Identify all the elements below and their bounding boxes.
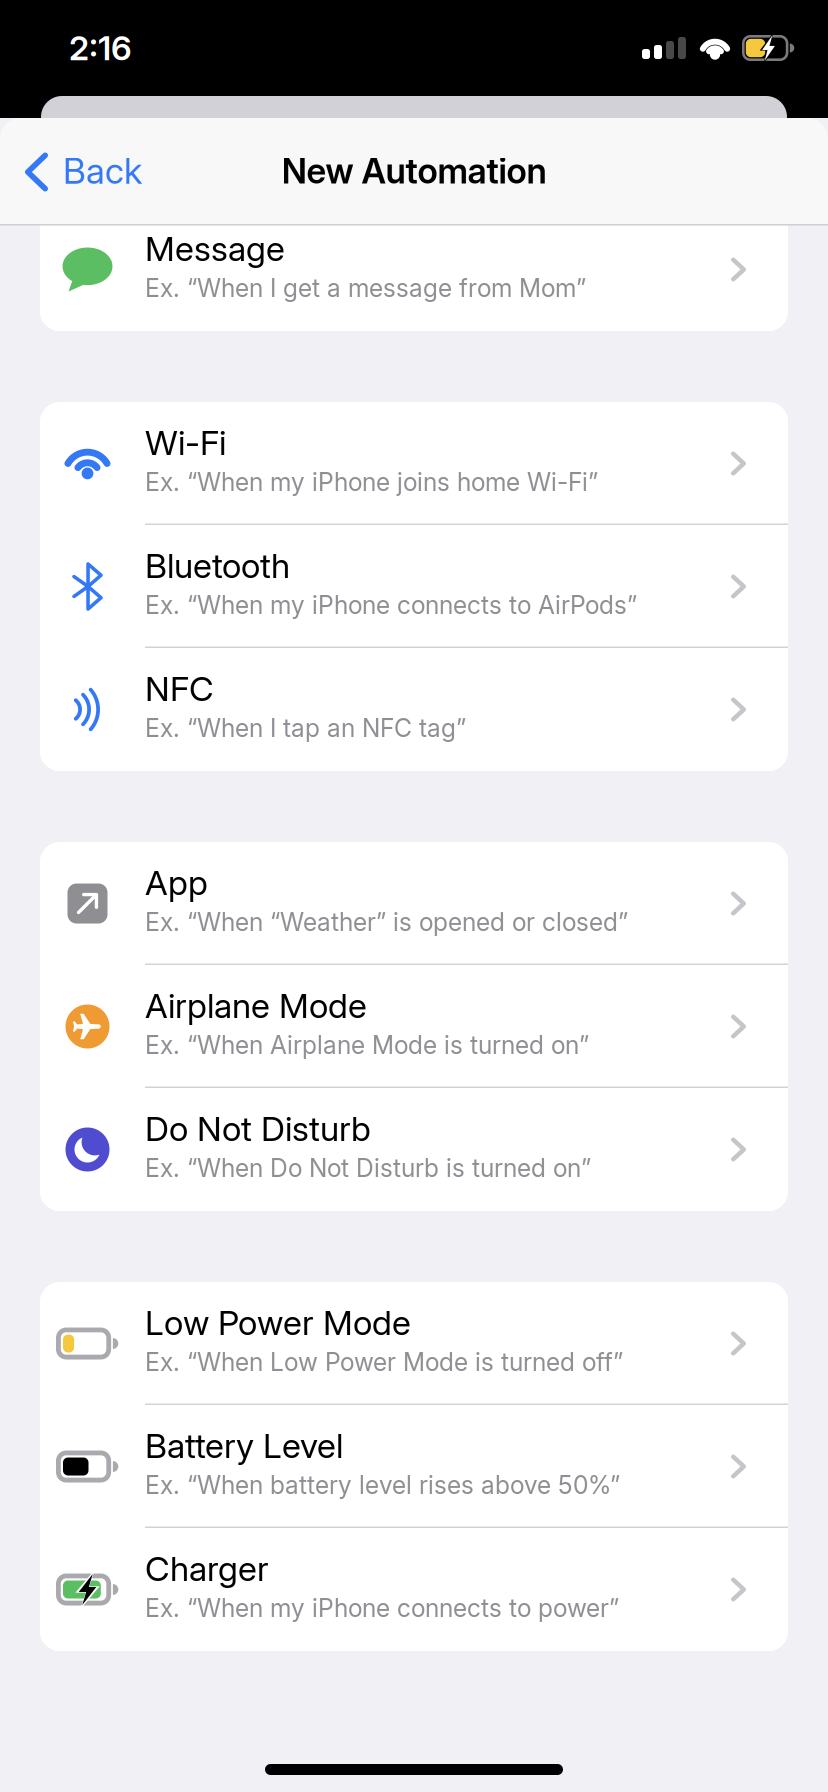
- button[interactable]: Message: [40, 208, 788, 331]
- staticText: Charger: [145, 1548, 269, 1589]
- staticText: Ex. “When Airplane Mode is turned on”: [145, 1030, 589, 1060]
- staticText: Ex. “When battery level rises above 50%”: [145, 1470, 620, 1500]
- staticText: Back: [63, 150, 142, 192]
- staticText: Ex. “When Low Power Mode is turned off”: [145, 1347, 623, 1377]
- button[interactable]: App: [40, 842, 788, 965]
- button[interactable]: Airplane Mode: [40, 965, 788, 1088]
- staticText: App: [145, 862, 208, 903]
- staticText: Ex. “When my iPhone connects to power”: [145, 1593, 619, 1623]
- button[interactable]: Charger: [40, 1528, 788, 1651]
- staticText: Bluetooth: [145, 545, 290, 586]
- staticText: Do Not Disturb: [145, 1108, 371, 1149]
- button[interactable]: Battery Level: [40, 1405, 788, 1528]
- button[interactable]: Low Power Mode: [40, 1282, 788, 1405]
- staticText: Ex. “When I tap an NFC tag”: [145, 713, 466, 743]
- staticText: Message: [145, 228, 285, 269]
- staticText: Low Power Mode: [145, 1302, 411, 1343]
- button[interactable]: Wi-Fi: [40, 402, 788, 525]
- staticText: Wi-Fi: [145, 422, 226, 463]
- staticText: Ex. “When my iPhone connects to AirPods”: [145, 590, 637, 620]
- button[interactable]: Bluetooth: [40, 525, 788, 648]
- staticText: New Automation: [281, 150, 546, 192]
- button[interactable]: Back: [0, 118, 164, 224]
- staticText: Ex. “When my iPhone joins home Wi-Fi”: [145, 467, 598, 497]
- staticText: NFC: [145, 668, 214, 709]
- button[interactable]: NFC: [40, 648, 788, 771]
- staticText: Ex. “When “Weather” is opened or closed”: [145, 907, 628, 937]
- staticText: Ex. “When Do Not Disturb is turned on”: [145, 1153, 591, 1183]
- staticText: Battery Level: [145, 1425, 343, 1466]
- staticText: Ex. “When I get a message from Mom”: [145, 273, 586, 303]
- staticText: Airplane Mode: [145, 985, 367, 1026]
- button[interactable]: Do Not Disturb: [40, 1088, 788, 1211]
- staticText: 2:16: [69, 28, 132, 68]
